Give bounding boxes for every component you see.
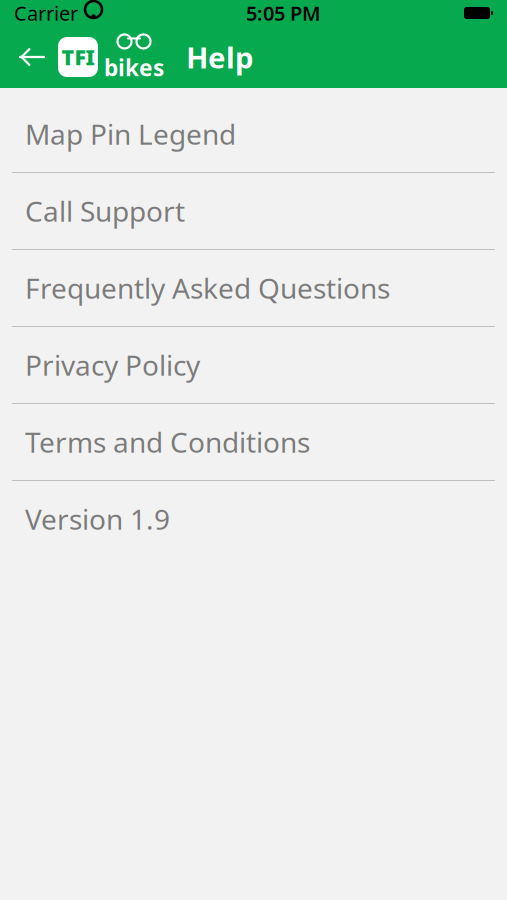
staticText: Privacy Policy bbox=[25, 346, 200, 384]
button[interactable]: Back bbox=[6, 26, 58, 88]
staticText: Map Pin Legend bbox=[25, 115, 236, 153]
button[interactable]: Privacy Policy bbox=[0, 327, 507, 403]
staticText: Carrier bbox=[14, 0, 78, 26]
staticText: bikes bbox=[104, 52, 164, 82]
button[interactable]: Frequently Asked Questions bbox=[0, 250, 507, 326]
staticText: 5:05 PM bbox=[246, 0, 321, 26]
staticText: Call Support bbox=[25, 192, 185, 230]
staticText: Version 1.9 bbox=[25, 500, 170, 538]
button[interactable]: Map Pin Legend bbox=[0, 96, 507, 172]
staticText: Terms and Conditions bbox=[25, 423, 310, 461]
button[interactable]: Call Support bbox=[0, 173, 507, 249]
staticText: TFI bbox=[61, 43, 94, 71]
staticText: Frequently Asked Questions bbox=[25, 269, 390, 307]
staticText: Help bbox=[186, 37, 254, 76]
button[interactable]: Terms and Conditions bbox=[0, 404, 507, 480]
button[interactable]: Version 1.9 bbox=[0, 481, 507, 557]
